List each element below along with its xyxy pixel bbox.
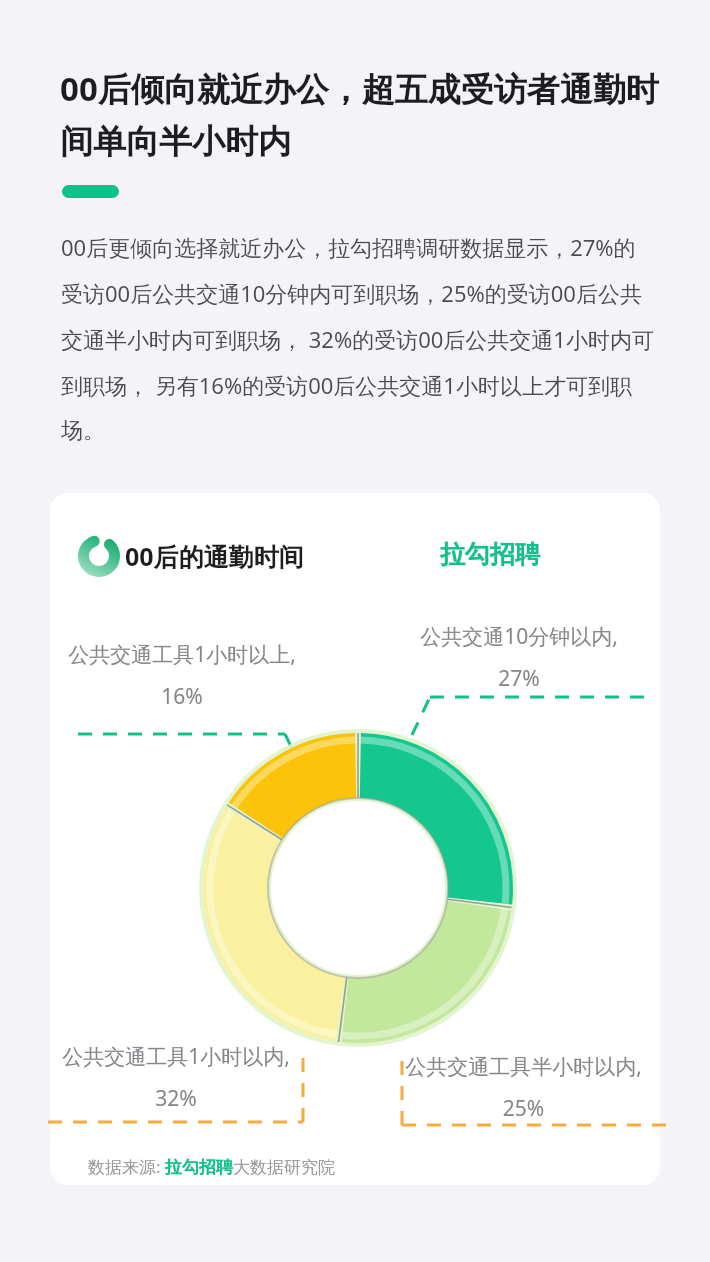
staticText: 拉勾招聘 — [440, 539, 540, 570]
staticText: 公共交通工具1小时以上, 16% — [68, 640, 296, 711]
staticText: 00后更倾向选择就近办公，拉勾招聘调研数据显示，27%的受访00后公共交通10分… — [61, 232, 657, 444]
staticText: 数据来源: 拉勾招聘大数据研究院 — [88, 1155, 335, 1178]
staticText: 00后倾向就近办公，超五成受访者通勤时间单向半小时内 — [60, 66, 660, 163]
other: Lagou logo — [78, 535, 120, 577]
staticText: 公共交通工具1小时以内, 32% — [62, 1042, 290, 1113]
staticText: 公共交通10分钟以内, 27% — [420, 622, 618, 693]
button[interactable] — [50, 493, 660, 1185]
staticText: 公共交通工具半小时以内, 25% — [405, 1052, 642, 1123]
staticText: 00后的通勤时间 — [125, 539, 304, 573]
